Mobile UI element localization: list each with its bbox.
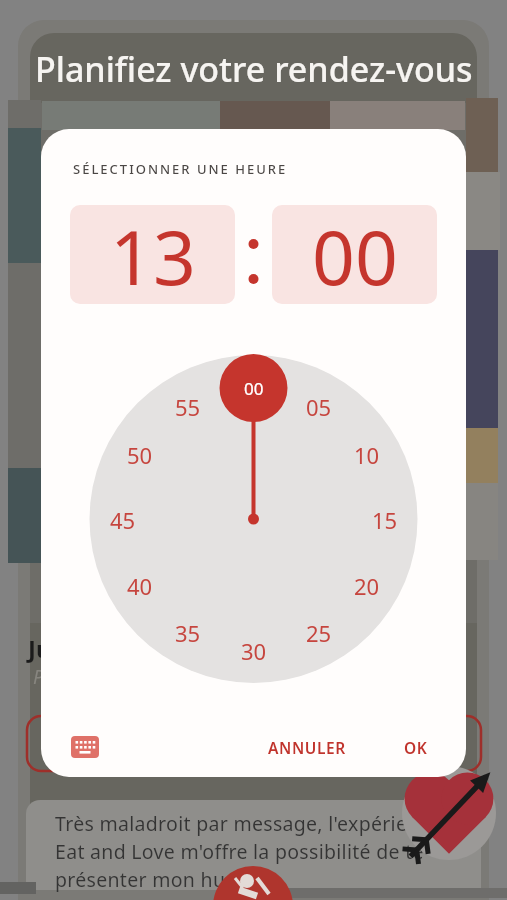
staticText: 45 [110,505,136,533]
staticText: Ph [33,664,55,690]
staticText: 05 [306,392,332,420]
staticText: 40 [127,571,153,599]
staticText: Planifiez votre rendez-vous [35,46,473,92]
staticText: ANNULER [268,737,346,758]
staticText: 10 [354,440,380,468]
button[interactable]: ANNULER [265,725,349,769]
staticText: présenter mon hu [55,866,226,893]
button[interactable]: OK [389,725,443,769]
button[interactable] [89,355,418,684]
staticText: 30 [241,636,267,664]
staticText: Ju [28,632,52,665]
staticText: 55 [175,392,201,420]
staticText: 13 [110,205,196,304]
button[interactable]: 13 [70,205,235,304]
staticText: Très maladroit par message, l'expérience [55,810,441,837]
staticText: Eat and Love m'offre la possibilité de t… [55,838,424,865]
staticText: 00 [244,377,264,400]
staticText: OK [404,737,428,758]
staticText: 20 [354,571,380,599]
staticText: 35 [175,618,201,646]
button[interactable]: 00 [272,205,437,304]
staticText: 00 [312,205,398,304]
staticText: 50 [127,440,153,468]
button[interactable] [61,727,109,767]
staticText: SÉLECTIONNER UNE HEURE [73,160,288,178]
staticText: 15 [372,505,398,533]
staticText: 25 [306,618,332,646]
